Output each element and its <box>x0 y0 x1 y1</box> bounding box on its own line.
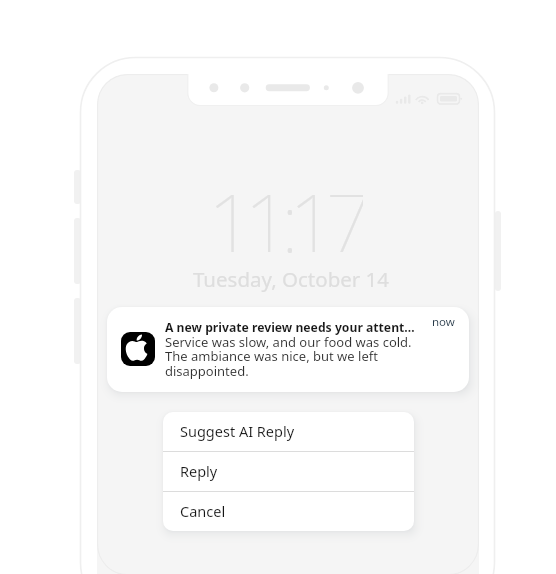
button[interactable]: Suggest AI Reply <box>163 412 414 451</box>
staticText: now <box>432 314 455 330</box>
staticText: A new private review needs your attent… <box>165 319 415 336</box>
staticText: Reply <box>180 461 218 481</box>
staticText: Tuesday, October 14 <box>193 265 390 293</box>
button[interactable]: A new private review needs your attent… <box>107 307 469 392</box>
staticText: Service was slow, and our food was cold. <box>165 333 412 351</box>
staticText: Suggest AI Reply <box>180 421 295 441</box>
staticText: 11:17 <box>208 166 363 262</box>
staticText: The ambiance was nice, but we left <box>165 347 378 365</box>
staticText: disappointed. <box>165 362 249 380</box>
button[interactable]: Cancel <box>163 492 414 531</box>
button[interactable]: Reply <box>163 452 414 491</box>
staticText: Cancel <box>180 501 226 521</box>
